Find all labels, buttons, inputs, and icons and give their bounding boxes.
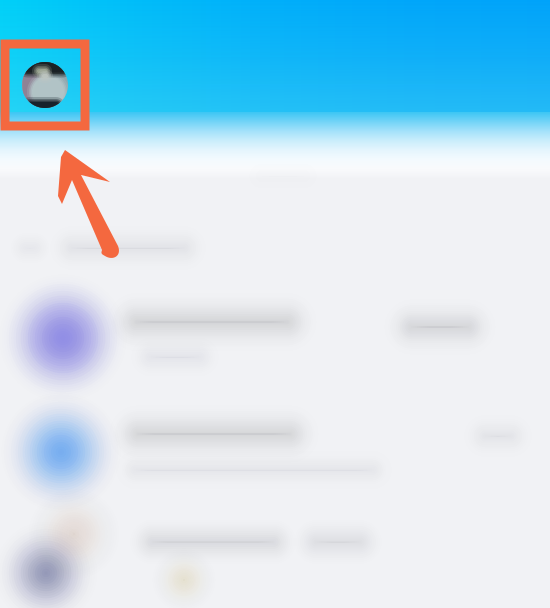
button[interactable] xyxy=(0,0,550,608)
button[interactable] xyxy=(0,0,550,608)
button[interactable] xyxy=(0,0,550,608)
button[interactable]: Profile avatar xyxy=(5,44,85,126)
